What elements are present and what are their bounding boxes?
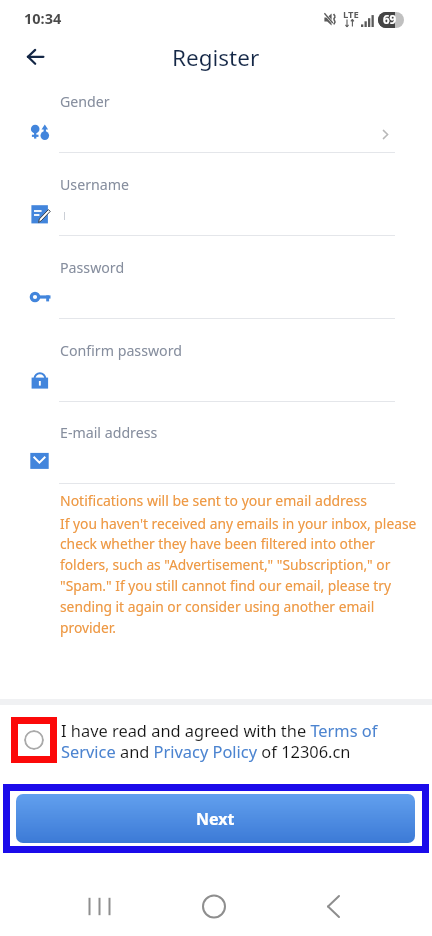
staticText: If you haven't received any emails in yo… [60,514,421,637]
button[interactable]: Gender [0,70,432,153]
staticText: Next [196,808,235,830]
staticText: E-mail address [60,423,158,442]
staticText: Confirm password [60,341,182,360]
button[interactable]: E-mail address [0,401,432,484]
button[interactable]: Back [314,886,354,926]
button[interactable]: Username [0,153,432,236]
staticText: Notifications will be sent to your email… [60,491,367,510]
staticText: I have read and agreed with the Terms of… [61,719,411,763]
button[interactable]: Home [194,886,234,926]
button[interactable]: Password [0,236,432,319]
staticText: Register [172,42,260,73]
button[interactable]: Recent apps [79,886,119,926]
button[interactable]: Next [16,794,415,843]
staticText: Password [60,258,125,277]
button[interactable]: Back [14,38,58,82]
staticText: LTE [343,8,359,21]
button[interactable]: Confirm password [0,319,432,402]
button[interactable]: Agree to terms checkbox [24,730,44,750]
staticText: Username [60,175,130,194]
staticText: Gender [60,92,110,111]
staticText: 69 [383,12,397,28]
staticText: 10:34 [24,8,62,28]
